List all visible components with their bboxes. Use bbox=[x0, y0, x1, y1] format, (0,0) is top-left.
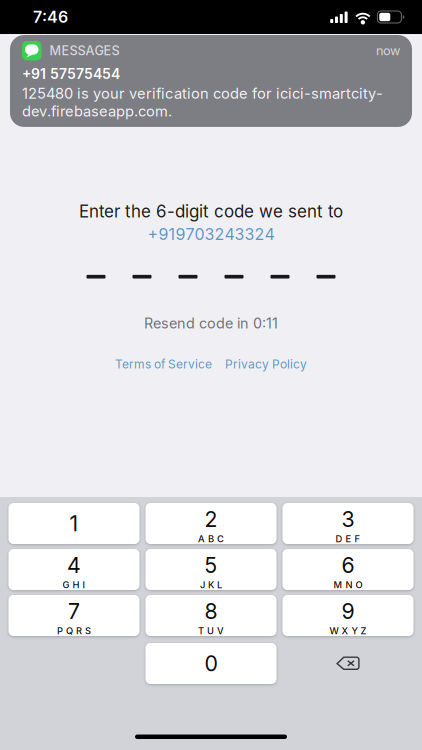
staticText: 7 bbox=[68, 598, 80, 624]
staticText: PQRS bbox=[57, 625, 91, 637]
staticText: 125480 is your verification code for ici… bbox=[22, 84, 383, 102]
staticText: DEF bbox=[335, 533, 360, 545]
button[interactable]: 1 bbox=[8, 503, 139, 544]
staticText: TUV bbox=[198, 625, 224, 637]
button[interactable]: 5 bbox=[145, 549, 276, 590]
staticText: 5 bbox=[204, 552, 217, 578]
staticText: WXYZ bbox=[329, 625, 366, 637]
staticText: 2 bbox=[204, 506, 217, 532]
button[interactable]: Terms of Service bbox=[115, 357, 212, 371]
staticText: MNO bbox=[333, 579, 362, 591]
staticText: 3 bbox=[341, 506, 354, 532]
button[interactable]: Privacy Policy bbox=[225, 357, 307, 371]
staticText: 4 bbox=[67, 552, 81, 578]
staticText: +91 57575454 bbox=[22, 65, 120, 82]
button[interactable]: 8 bbox=[145, 595, 276, 636]
staticText: Enter the 6-digit code we sent to bbox=[79, 201, 343, 221]
button[interactable]: 2 bbox=[145, 503, 276, 544]
button[interactable]: 3 bbox=[282, 503, 413, 544]
staticText: 0 bbox=[204, 651, 217, 676]
staticText: 7:46 bbox=[33, 7, 68, 27]
button[interactable]: 7 bbox=[8, 595, 139, 636]
button[interactable]: 6 bbox=[282, 549, 413, 590]
staticText: Terms of Service bbox=[115, 357, 212, 371]
button[interactable]: MESSAGES bbox=[10, 35, 412, 127]
staticText: +919703243324 bbox=[147, 224, 274, 244]
button[interactable]: 0 bbox=[145, 643, 276, 684]
staticText: now bbox=[376, 43, 400, 58]
staticText: Resend code in 0:11 bbox=[144, 314, 278, 332]
button[interactable]: +919703243324 bbox=[147, 221, 274, 244]
button[interactable]: 9 bbox=[282, 595, 413, 636]
button[interactable]: Delete bbox=[282, 643, 413, 684]
staticText: dev.firebaseapp.com. bbox=[22, 102, 172, 120]
staticText: 8 bbox=[204, 598, 217, 624]
staticText: 9 bbox=[341, 598, 354, 624]
staticText: JKL bbox=[200, 579, 222, 591]
staticText: MESSAGES bbox=[49, 43, 119, 58]
staticText: ABC bbox=[198, 533, 224, 545]
staticText: 1 bbox=[69, 511, 78, 536]
staticText: 6 bbox=[341, 552, 354, 578]
button[interactable]: 4 bbox=[8, 549, 139, 590]
staticText: GHI bbox=[62, 579, 85, 591]
staticText: Privacy Policy bbox=[225, 357, 307, 371]
